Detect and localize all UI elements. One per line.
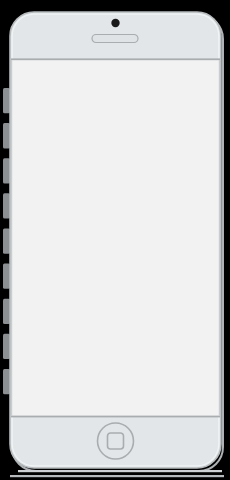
button[interactable]: Phone device illustration: [0, 0, 230, 480]
